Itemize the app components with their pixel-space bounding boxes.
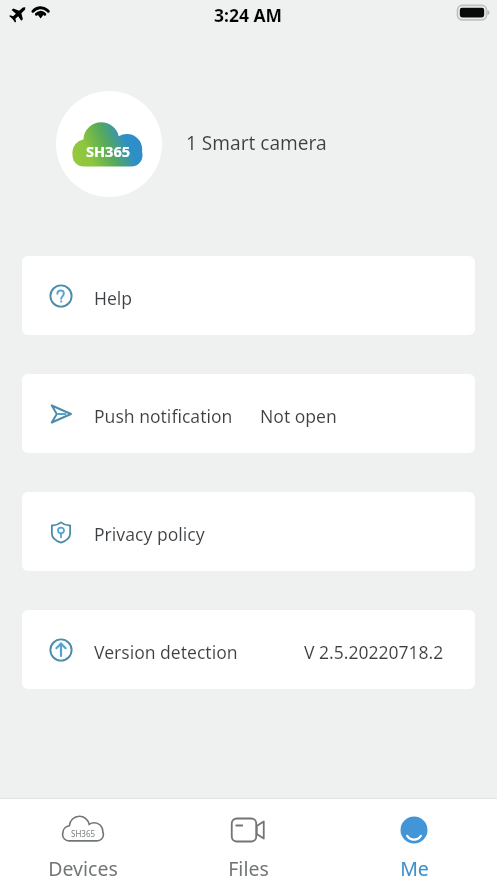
staticText: Devices: [48, 855, 118, 882]
button[interactable]: Privacy policy: [22, 492, 475, 571]
button[interactable]: Devices: [0, 799, 165, 883]
button[interactable]: Files: [165, 799, 331, 883]
staticText: V 2.5.20220718.2: [304, 640, 444, 664]
staticText: Help: [94, 286, 133, 310]
staticText: Files: [228, 855, 269, 882]
button[interactable]: Push notification: [22, 374, 475, 453]
staticText: 3:24 AM: [214, 3, 283, 27]
staticText: Version detection: [94, 640, 238, 664]
staticText: Push notification: [94, 404, 233, 428]
staticText: SH365: [71, 828, 96, 839]
staticText: 1 Smart camera: [186, 130, 327, 156]
button[interactable]: Me: [331, 799, 497, 883]
button[interactable]: Help: [22, 256, 475, 335]
staticText: Me: [400, 855, 429, 882]
staticText: SH365: [86, 141, 130, 161]
staticText: Privacy policy: [94, 522, 205, 546]
button[interactable]: Profile avatar: [56, 91, 162, 197]
staticText: Not open: [260, 404, 337, 428]
button[interactable]: Version detection: [22, 610, 475, 689]
